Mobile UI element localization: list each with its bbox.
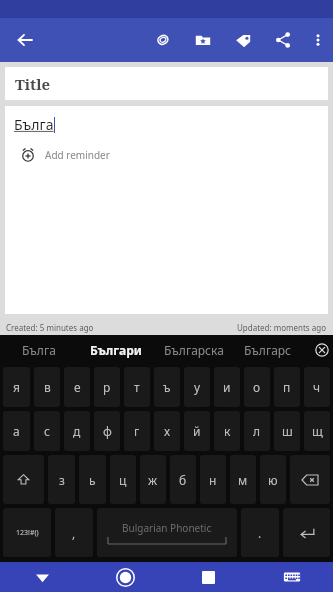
button[interactable]: Labels: [223, 18, 263, 62]
button[interactable]: щ: [304, 411, 330, 451]
button[interactable]: я: [3, 367, 30, 407]
button[interactable]: ч: [304, 367, 330, 407]
staticText: Add reminder: [45, 148, 110, 162]
button[interactable]: 123!#(): [3, 508, 51, 557]
staticText: .: [258, 525, 262, 541]
staticText: Created: 5 minutes ago: [6, 322, 94, 333]
staticText: ь: [89, 472, 96, 488]
button[interactable]: Hide keyboard: [0, 562, 84, 592]
button[interactable]: ь: [79, 455, 106, 504]
staticText: ю: [268, 472, 278, 488]
button[interactable]: л: [244, 411, 270, 451]
staticText: я: [13, 379, 20, 395]
button[interactable]: Move to folder: [183, 18, 223, 62]
staticText: ф: [103, 423, 112, 439]
button[interactable]: н: [200, 455, 226, 504]
staticText: Title: [15, 74, 51, 94]
button[interactable]: Attach: [143, 18, 183, 62]
staticText: г: [134, 423, 140, 439]
staticText: щ: [312, 423, 323, 439]
button[interactable]: Home: [84, 562, 167, 592]
button[interactable]: Бълга: [0, 335, 77, 365]
button[interactable]: п: [274, 367, 300, 407]
staticText: с: [44, 423, 50, 439]
staticText: у: [194, 379, 201, 395]
staticText: р: [103, 379, 111, 395]
button[interactable]: Бълга: [5, 106, 328, 314]
staticText: й: [193, 423, 201, 439]
staticText: Българс: [244, 342, 292, 358]
staticText: Бълга: [22, 342, 56, 358]
button[interactable]: а: [3, 411, 30, 451]
button[interactable]: ц: [110, 455, 136, 504]
staticText: н: [209, 472, 217, 488]
button[interactable]: Българс: [233, 335, 311, 365]
staticText: о: [253, 379, 261, 395]
staticText: Българи: [90, 342, 142, 358]
staticText: Българска: [164, 342, 224, 358]
button[interactable]: Switch keyboard: [250, 562, 333, 592]
staticText: м: [238, 472, 248, 488]
staticText: п: [283, 379, 291, 395]
button[interactable]: е: [64, 367, 90, 407]
staticText: 123!#(): [16, 528, 39, 538]
staticText: з: [59, 472, 65, 488]
button[interactable]: Българи: [77, 335, 155, 365]
button[interactable]: .: [241, 508, 279, 557]
button[interactable]: и: [214, 367, 240, 407]
staticText: Бълга: [14, 115, 54, 134]
staticText: ,: [72, 525, 76, 541]
button[interactable]: у: [184, 367, 210, 407]
staticText: х: [164, 423, 171, 439]
staticText: б: [179, 472, 187, 488]
button[interactable]: Share: [263, 18, 303, 62]
button[interactable]: ф: [94, 411, 120, 451]
button[interactable]: в: [34, 367, 60, 407]
button[interactable]: х: [154, 411, 180, 451]
button[interactable]: Space: [97, 508, 237, 557]
button[interactable]: Close suggestions: [311, 335, 333, 365]
button[interactable]: с: [34, 411, 60, 451]
button[interactable]: м: [230, 455, 256, 504]
button[interactable]: Recents: [167, 562, 250, 592]
button[interactable]: г: [124, 411, 150, 451]
button[interactable]: т: [124, 367, 150, 407]
staticText: ж: [148, 472, 158, 488]
button[interactable]: ю: [260, 455, 286, 504]
button[interactable]: Backspace: [290, 455, 330, 504]
staticText: ъ: [163, 379, 171, 395]
button[interactable]: More options: [303, 18, 333, 62]
staticText: ц: [119, 472, 127, 488]
button[interactable]: й: [184, 411, 210, 451]
button[interactable]: Title: [5, 67, 328, 100]
button[interactable]: Add reminder: [19, 146, 110, 164]
staticText: а: [13, 423, 20, 439]
button[interactable]: з: [48, 455, 75, 504]
staticText: ч: [313, 379, 321, 395]
staticText: л: [253, 423, 261, 439]
staticText: т: [134, 379, 140, 395]
staticText: е: [74, 379, 81, 395]
staticText: к: [224, 423, 231, 439]
button[interactable]: б: [170, 455, 196, 504]
button[interactable]: Shift: [3, 455, 44, 504]
button[interactable]: д: [64, 411, 90, 451]
staticText: в: [44, 379, 51, 395]
staticText: Bulgarian Phonetic: [122, 521, 212, 535]
button[interactable]: к: [214, 411, 240, 451]
staticText: ш: [282, 423, 293, 439]
button[interactable]: р: [94, 367, 120, 407]
button[interactable]: Back: [0, 18, 50, 62]
staticText: Updated: moments ago: [237, 322, 327, 333]
button[interactable]: ш: [274, 411, 300, 451]
button[interactable]: ъ: [154, 367, 180, 407]
button[interactable]: Enter: [283, 508, 330, 557]
staticText: и: [223, 379, 231, 395]
staticText: д: [73, 423, 81, 439]
button[interactable]: ж: [140, 455, 166, 504]
button[interactable]: ,: [55, 508, 93, 557]
button[interactable]: о: [244, 367, 270, 407]
button[interactable]: Българска: [155, 335, 233, 365]
